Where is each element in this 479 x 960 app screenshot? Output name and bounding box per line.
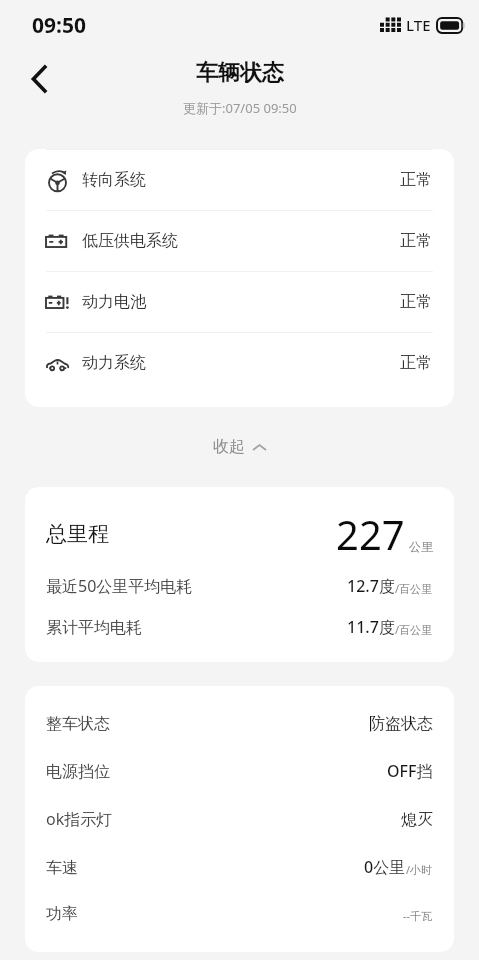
- button[interactable]: ok指示灯: [46, 808, 433, 830]
- staticText: OFF挡: [387, 760, 433, 782]
- button[interactable]: 电源挡位: [46, 760, 433, 782]
- staticText: /小时: [406, 862, 433, 877]
- staticText: 车速: [46, 858, 78, 878]
- staticText: 0公里: [364, 856, 406, 878]
- button[interactable]: 最近50公里平均电耗: [46, 575, 433, 597]
- button[interactable]: 累计平均电耗: [46, 616, 433, 638]
- staticText: 功率: [46, 904, 78, 924]
- staticText: 车辆状态: [196, 59, 284, 87]
- button[interactable]: 转向系统: [25, 150, 454, 210]
- staticText: 正常: [400, 231, 432, 251]
- staticText: 正常: [400, 353, 432, 373]
- staticText: 正常: [400, 292, 432, 312]
- staticText: 防盗状态: [369, 714, 433, 734]
- button[interactable]: 低压供电系统: [25, 211, 454, 271]
- staticText: 更新于:07/05 09:50: [183, 99, 297, 117]
- staticText: ok指示灯: [46, 808, 113, 830]
- button[interactable]: 车速: [46, 856, 433, 878]
- button[interactable]: 动力系统: [25, 333, 454, 393]
- staticText: 总里程: [46, 521, 109, 547]
- staticText: 09:50: [32, 11, 86, 40]
- staticText: 整车状态: [46, 714, 110, 734]
- button[interactable]: Back: [14, 54, 64, 104]
- staticText: 电源挡位: [46, 762, 110, 782]
- staticText: 低压供电系统: [82, 231, 178, 251]
- staticText: 正常: [400, 170, 432, 190]
- staticText: LTE: [406, 15, 431, 35]
- staticText: 最近50公里平均电耗: [46, 575, 193, 597]
- button[interactable]: 动力电池: [25, 272, 454, 332]
- button[interactable]: 总里程: [46, 507, 433, 561]
- staticText: 熄灭: [401, 810, 433, 830]
- staticText: 收起: [213, 437, 245, 457]
- button[interactable]: 收起: [197, 428, 282, 466]
- staticText: /百公里: [395, 581, 433, 596]
- staticText: 12.7度: [347, 575, 395, 597]
- staticText: 累计平均电耗: [46, 618, 142, 638]
- staticText: 公里: [409, 539, 433, 554]
- button[interactable]: 整车状态: [46, 714, 433, 734]
- staticText: 11.7度: [347, 616, 395, 638]
- staticText: 动力电池: [82, 292, 146, 312]
- staticText: 动力系统: [82, 353, 146, 373]
- staticText: /百公里: [395, 622, 433, 637]
- button[interactable]: 功率: [46, 904, 433, 924]
- staticText: 转向系统: [82, 170, 146, 190]
- staticText: --千瓦: [403, 908, 433, 923]
- staticText: 227: [336, 507, 405, 561]
